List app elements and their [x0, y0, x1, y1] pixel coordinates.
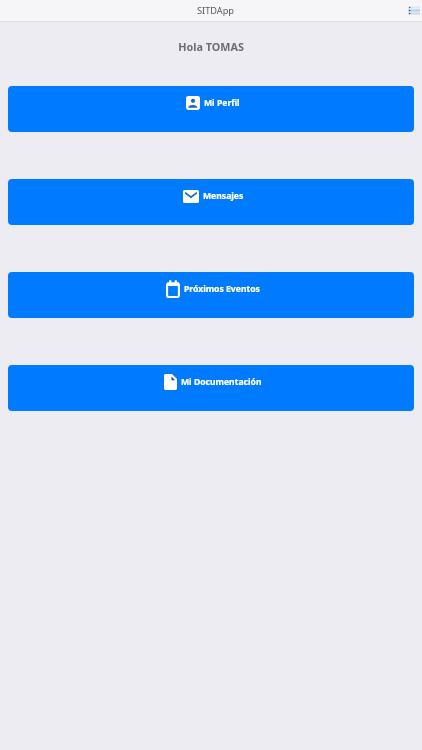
- staticText: SITDApp: [197, 4, 234, 17]
- staticText: Mi Perfil: [204, 97, 240, 109]
- button[interactable]: Próximos Eventos: [8, 272, 414, 318]
- button[interactable]: Menu: [407, 5, 420, 16]
- button[interactable]: Mensajes: [8, 179, 414, 225]
- button[interactable]: Mi Documentación: [8, 365, 414, 411]
- staticText: Próximos Eventos: [184, 283, 260, 295]
- staticText: Mi Documentación: [181, 376, 262, 388]
- button[interactable]: Mi Perfil: [8, 86, 414, 132]
- staticText: Hola TOMAS: [0, 39, 422, 54]
- staticText: Mensajes: [203, 190, 244, 202]
